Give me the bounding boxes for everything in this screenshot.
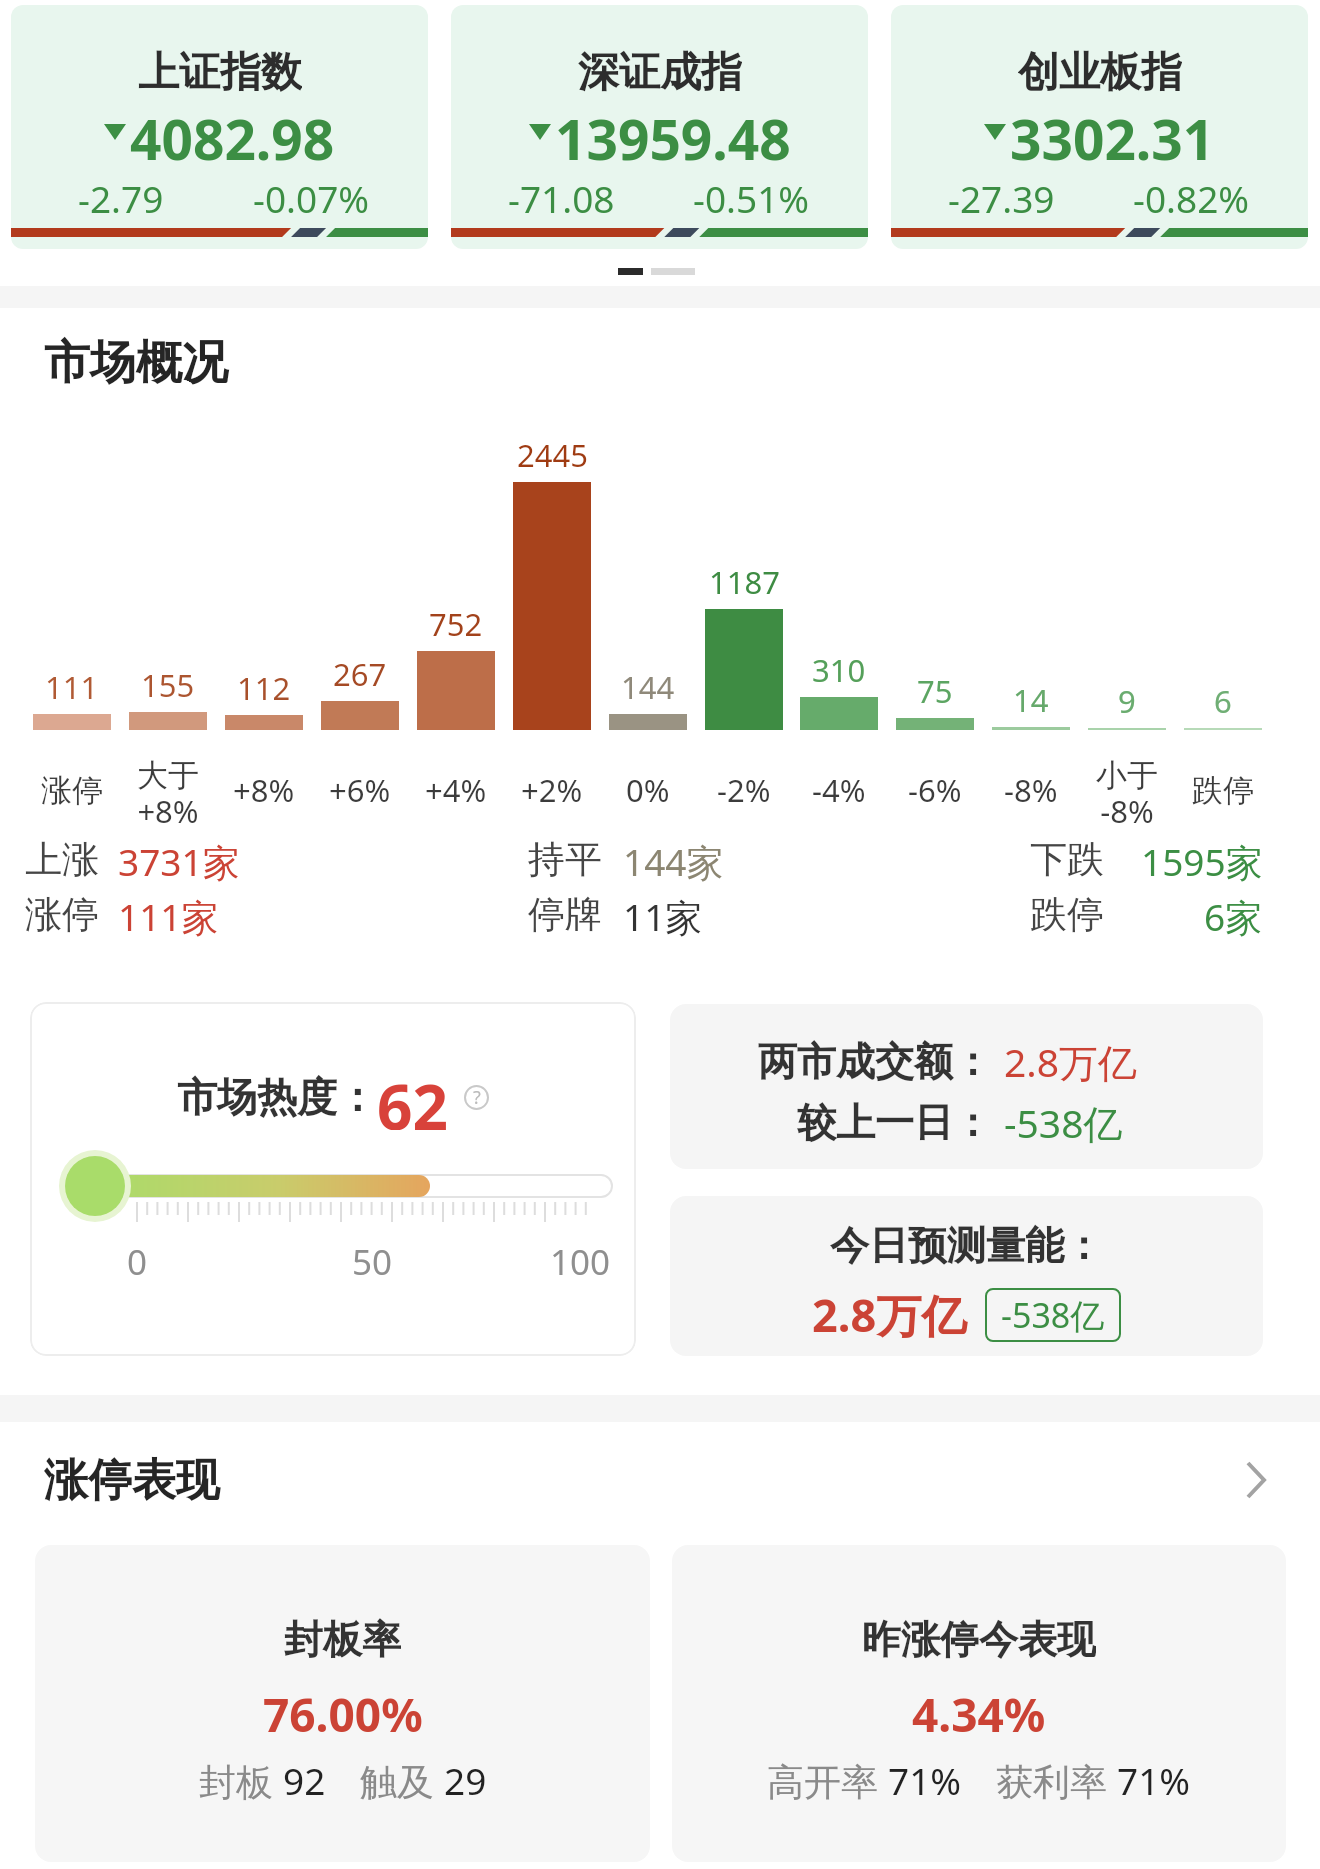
staticText: 涨停 xyxy=(25,891,99,938)
staticText: 71% xyxy=(1117,1755,1191,1801)
staticText: -0.07% xyxy=(253,173,370,215)
button[interactable]: 今日预测量能： xyxy=(670,1196,1263,1356)
staticText: 封板率 xyxy=(284,1615,401,1661)
staticText: 752 xyxy=(429,603,483,643)
staticText: 144 xyxy=(621,666,675,706)
staticText: 92 xyxy=(283,1755,326,1801)
staticText: 跌停 xyxy=(1192,771,1254,810)
staticText: 111 xyxy=(45,666,99,706)
button[interactable]: 封板率 xyxy=(35,1545,650,1862)
staticText: -0.51% xyxy=(693,173,810,215)
staticText: -2.79 xyxy=(78,173,164,215)
staticText: 市场概况 xyxy=(44,334,228,392)
staticText: 75 xyxy=(917,670,953,710)
staticText: -6% xyxy=(908,769,962,811)
staticText: +8% xyxy=(233,769,295,811)
staticText: 3731家 xyxy=(118,836,240,887)
staticText: 持平 xyxy=(528,836,602,883)
staticText: 50 xyxy=(352,1238,393,1286)
staticText: 1187 xyxy=(709,561,780,601)
staticText: 触及 xyxy=(360,1755,444,1801)
staticText: 155 xyxy=(141,664,195,704)
staticText: 0% xyxy=(626,769,670,811)
staticText: -538亿 xyxy=(1001,1292,1105,1338)
staticText: 0 xyxy=(127,1238,148,1286)
staticText: 2.8万亿 xyxy=(812,1284,967,1345)
button[interactable]: 市场热度： xyxy=(30,1002,636,1356)
staticText: 获利率 xyxy=(996,1755,1117,1801)
staticText: 111家 xyxy=(118,891,219,942)
staticText: +2% xyxy=(521,769,583,811)
staticText: 小于 -8% xyxy=(1096,756,1158,832)
staticText: 13959.48 xyxy=(555,101,791,161)
button[interactable]: 两市成交额： xyxy=(670,1004,1263,1169)
staticText: 14 xyxy=(1013,679,1049,719)
staticText: 1595家 xyxy=(1141,836,1263,887)
staticText: 上涨 xyxy=(25,836,99,883)
staticText: 大于 +8% xyxy=(137,756,199,832)
staticText: +4% xyxy=(425,769,487,811)
staticText: 下跌 xyxy=(1030,836,1104,883)
staticText: 100 xyxy=(550,1238,611,1286)
staticText: 两市成交额： xyxy=(758,1037,992,1086)
staticText: -8% xyxy=(1004,769,1058,811)
staticText: 4.34% xyxy=(912,1683,1046,1735)
staticText: 9 xyxy=(1118,680,1136,720)
staticText: 3302.31 xyxy=(1010,101,1215,161)
staticText: 今日预测量能： xyxy=(830,1221,1103,1270)
staticText: -2% xyxy=(717,769,771,811)
staticText: 创业板指 xyxy=(1018,47,1182,93)
button[interactable]: 上证指数 xyxy=(11,5,428,249)
staticText: -71.08 xyxy=(508,173,615,215)
button[interactable]: 涨停表现 xyxy=(0,1448,1320,1512)
staticText: 涨停表现 xyxy=(44,1453,220,1508)
staticText: 2.8万亿 xyxy=(1004,1035,1138,1088)
staticText: 深证成指 xyxy=(578,47,742,93)
staticText: 6家 xyxy=(1204,891,1263,942)
staticText: 较上一日： xyxy=(797,1098,992,1147)
button[interactable]: 创业板指 xyxy=(891,5,1308,249)
staticText: -27.39 xyxy=(948,173,1055,215)
staticText: 62 xyxy=(377,1064,448,1130)
staticText: 29 xyxy=(444,1755,487,1801)
staticText: 71% xyxy=(888,1755,962,1801)
staticText: 144家 xyxy=(623,836,724,887)
button[interactable]: 昨涨停今表现 xyxy=(672,1545,1286,1862)
staticText: 310 xyxy=(812,649,866,689)
staticText: 6 xyxy=(1214,680,1232,720)
staticText: 2445 xyxy=(517,434,588,474)
staticText: 停牌 xyxy=(528,891,602,938)
staticText: 上证指数 xyxy=(138,47,302,93)
staticText: 跌停 xyxy=(1030,891,1104,938)
staticText: 涨停 xyxy=(41,771,103,810)
staticText: ? xyxy=(473,1085,481,1110)
staticText: 76.00% xyxy=(263,1683,423,1735)
button[interactable]: 深证成指 xyxy=(451,5,868,249)
staticText: -538亿 xyxy=(1004,1096,1123,1149)
staticText: 112 xyxy=(237,667,291,707)
staticText: 11家 xyxy=(623,891,703,942)
staticText: 市场热度： xyxy=(177,1072,377,1122)
staticText: 4082.98 xyxy=(130,101,335,161)
staticText: 267 xyxy=(333,653,387,693)
staticText: -4% xyxy=(812,769,866,811)
staticText: +6% xyxy=(329,769,391,811)
staticText: -0.82% xyxy=(1133,173,1250,215)
staticText: 昨涨停今表现 xyxy=(862,1615,1096,1661)
staticText: 封板 xyxy=(199,1755,283,1801)
staticText: 高开率 xyxy=(767,1755,888,1801)
